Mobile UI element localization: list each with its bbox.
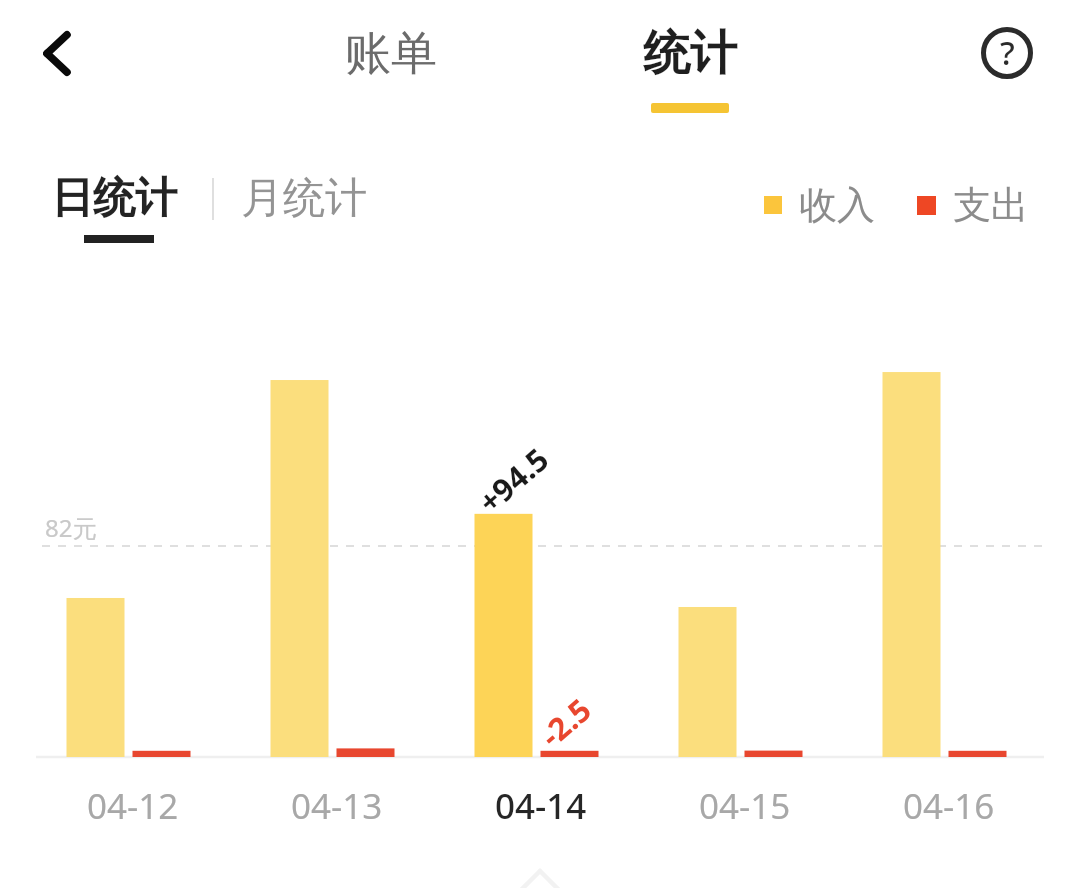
staticText: 04-14	[495, 782, 587, 830]
button[interactable]: 统计	[618, 24, 762, 124]
staticText: 月统计	[241, 172, 367, 225]
button[interactable]: 月统计	[241, 172, 371, 232]
button[interactable]: 04-14	[439, 330, 643, 830]
staticText: 收入	[799, 181, 875, 229]
button[interactable]: 04-13	[235, 330, 439, 830]
staticText: -2.5	[531, 688, 600, 756]
staticText: ?	[1000, 30, 1015, 75]
staticText: 04-15	[699, 782, 791, 830]
staticText: 账单	[345, 25, 437, 83]
button[interactable]: Back	[22, 21, 84, 83]
staticText: 04-13	[291, 782, 383, 830]
staticText: 04-12	[87, 782, 179, 830]
staticText: 支出	[953, 181, 1029, 229]
button[interactable]: 账单	[327, 14, 455, 94]
button[interactable]: 日统计	[51, 172, 181, 258]
button[interactable]: 04-16	[847, 330, 1051, 830]
staticText: 04-16	[903, 782, 995, 830]
staticText: 82元	[45, 511, 97, 544]
button[interactable]: Help	[973, 19, 1041, 87]
staticText: +94.5	[469, 438, 557, 522]
button[interactable]: 04-15	[643, 330, 847, 830]
staticText: 日统计	[51, 172, 177, 225]
staticText: 统计	[643, 24, 737, 83]
button[interactable]: 04-12	[31, 330, 235, 830]
